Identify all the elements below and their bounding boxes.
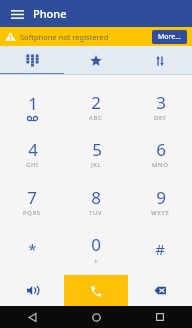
button[interactable]: Back [0, 306, 64, 328]
button[interactable]: Favorites [64, 46, 128, 75]
staticText: More... [158, 32, 181, 42]
button[interactable]: Recents [128, 306, 192, 328]
staticText: 9 [156, 186, 166, 209]
button[interactable]: 8 [64, 177, 128, 225]
staticText: GHI [26, 161, 39, 169]
staticText: JKL [91, 161, 102, 169]
staticText: + [94, 257, 98, 266]
staticText: # [155, 239, 165, 259]
button[interactable]: # [128, 225, 192, 273]
staticText: PQRS [23, 209, 41, 217]
staticText: TUV [89, 209, 103, 217]
staticText: 5 [92, 138, 102, 161]
button[interactable]: 2 [64, 83, 128, 130]
staticText: * [28, 239, 37, 259]
staticText: 3 [156, 91, 166, 114]
staticText: MNO [152, 161, 169, 169]
staticText: 1 [28, 92, 38, 115]
button[interactable]: 7 [0, 177, 64, 225]
staticText: 7 [27, 186, 37, 209]
staticText: 8 [91, 186, 101, 209]
button[interactable]: More... [152, 30, 187, 44]
staticText: 2 [91, 91, 101, 114]
button[interactable]: 0 [64, 225, 128, 273]
staticText: Softphone not registered [20, 32, 109, 42]
button[interactable]: Call [64, 275, 128, 306]
staticText: ABC [89, 114, 103, 122]
button[interactable]: 1 [0, 83, 64, 130]
staticText: 6 [156, 138, 166, 161]
button[interactable]: Speaker [0, 275, 64, 306]
staticText: DEF [154, 114, 167, 122]
button[interactable]: 3 [128, 83, 192, 130]
staticText: Phone [33, 6, 67, 21]
button[interactable]: Call history [128, 46, 192, 75]
button[interactable]: 5 [64, 130, 128, 177]
button[interactable]: Menu [7, 4, 27, 24]
button[interactable]: Home [64, 306, 128, 328]
button[interactable]: Backspace [128, 275, 192, 306]
staticText: 4 [28, 138, 38, 161]
button[interactable]: 4 [0, 130, 64, 177]
staticText: 0 [91, 233, 101, 256]
staticText: WXYZ [151, 209, 170, 217]
button[interactable]: Dialpad [0, 46, 64, 75]
button[interactable]: 9 [128, 177, 192, 225]
button[interactable]: 6 [128, 130, 192, 177]
button[interactable]: * [0, 225, 64, 273]
